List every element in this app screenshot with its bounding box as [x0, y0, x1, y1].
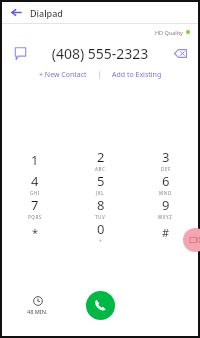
button[interactable]: 4: [2, 172, 68, 196]
button[interactable]: 8: [68, 196, 133, 220]
staticText: TUV: [95, 214, 106, 220]
staticText: #: [162, 225, 170, 240]
staticText: 4: [31, 172, 39, 190]
staticText: 3: [162, 148, 170, 166]
staticText: MNO: [159, 190, 172, 196]
staticText: WXYZ: [158, 214, 173, 220]
button[interactable]: 0: [68, 220, 133, 244]
staticText: JKL: [96, 190, 105, 196]
staticText: 1: [31, 151, 39, 169]
button[interactable]: Call: [86, 291, 115, 320]
staticText: Add to Existing: [112, 70, 162, 80]
button[interactable]: 2: [68, 148, 133, 172]
button[interactable]: 6: [133, 172, 198, 196]
button[interactable]: 48 MIN.: [24, 293, 51, 318]
button[interactable]: Send message: [2, 40, 38, 66]
staticText: DEF: [161, 166, 171, 172]
button[interactable]: + New Contact: [33, 68, 93, 82]
staticText: ABC: [95, 166, 106, 172]
staticText: HD Quality: [155, 29, 183, 36]
button[interactable]: Backspace: [162, 40, 198, 66]
staticText: 9: [162, 196, 170, 214]
button[interactable]: 3: [133, 148, 198, 172]
staticText: GHI: [30, 190, 40, 196]
button[interactable]: 7: [2, 196, 68, 220]
button[interactable]: Video call: [183, 228, 200, 252]
staticText: 8: [97, 196, 105, 214]
staticText: 6: [162, 172, 170, 190]
button[interactable]: 1: [2, 148, 68, 172]
button[interactable]: Back: [2, 2, 30, 23]
staticText: +: [99, 238, 103, 244]
staticText: + New Contact: [39, 70, 87, 80]
button[interactable]: 9: [133, 196, 198, 220]
button[interactable]: *: [2, 220, 68, 244]
staticText: 0: [97, 220, 105, 238]
staticText: Dialpad: [30, 7, 63, 19]
button[interactable]: #: [133, 220, 198, 244]
button[interactable]: 5: [68, 172, 133, 196]
staticText: (408) 555-2323: [38, 44, 162, 63]
staticText: PQRS: [28, 214, 42, 220]
staticText: 48 MIN.: [27, 308, 48, 315]
staticText: *: [32, 225, 39, 240]
button[interactable]: Add to Existing: [106, 68, 168, 82]
staticText: 2: [97, 148, 105, 166]
staticText: 7: [31, 196, 39, 214]
staticText: 5: [97, 172, 105, 190]
